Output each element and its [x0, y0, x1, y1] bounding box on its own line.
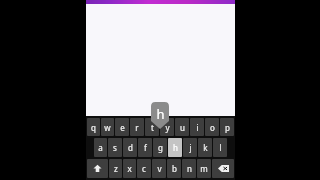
staticText: f — [144, 142, 147, 153]
button[interactable]: h — [168, 138, 182, 157]
staticText: h — [173, 142, 178, 153]
staticText: p — [225, 122, 230, 133]
button[interactable]: y — [160, 118, 174, 136]
staticText: u — [180, 122, 185, 133]
staticText: c — [142, 163, 146, 174]
staticText: n — [187, 163, 192, 174]
button[interactable]: r — [130, 118, 144, 136]
staticText: g — [158, 142, 163, 153]
button[interactable]: Key preview h — [151, 102, 169, 129]
button[interactable]: a — [94, 138, 107, 157]
staticText: m — [200, 163, 208, 174]
button[interactable]: n — [182, 159, 196, 178]
button[interactable]: m — [197, 159, 211, 178]
button[interactable]: k — [198, 138, 212, 157]
button[interactable]: c — [137, 159, 151, 178]
staticText: q — [91, 122, 96, 133]
button[interactable]: u — [175, 118, 189, 136]
button[interactable]: b — [167, 159, 181, 178]
staticText: i — [196, 122, 199, 133]
button[interactable]: z — [109, 159, 122, 178]
staticText: d — [128, 142, 133, 153]
staticText: e — [120, 122, 125, 133]
staticText: r — [135, 122, 139, 133]
button[interactable]: x — [123, 159, 136, 178]
button[interactable]: i — [190, 118, 204, 136]
button[interactable]: Backspace — [212, 159, 234, 178]
staticText: o — [210, 122, 215, 133]
staticText: x — [127, 163, 132, 174]
button[interactable]: g — [153, 138, 167, 157]
button[interactable]: s — [108, 138, 122, 157]
button[interactable]: p — [220, 118, 234, 136]
button[interactable]: w — [101, 118, 114, 136]
button[interactable]: d — [123, 138, 137, 157]
button[interactable] — [86, 4, 235, 116]
staticText: w — [104, 122, 111, 133]
button[interactable]: q — [87, 118, 100, 136]
staticText: y — [165, 122, 170, 133]
staticText: b — [172, 163, 177, 174]
button[interactable]: v — [152, 159, 166, 178]
staticText: l — [219, 142, 222, 153]
button[interactable]: j — [183, 138, 197, 157]
staticText: s — [113, 142, 117, 153]
staticText: t — [151, 122, 154, 133]
staticText: a — [98, 142, 103, 153]
button[interactable]: o — [205, 118, 219, 136]
button[interactable]: t — [145, 118, 159, 136]
staticText: h — [156, 105, 165, 123]
button[interactable]: e — [115, 118, 129, 136]
button[interactable]: l — [213, 138, 227, 157]
button[interactable]: Shift — [87, 159, 108, 178]
button[interactable] — [86, 0, 235, 4]
button[interactable]: f — [138, 138, 152, 157]
staticText: j — [189, 142, 192, 153]
staticText: k — [203, 142, 208, 153]
staticText: z — [114, 163, 118, 174]
staticText: v — [157, 163, 162, 174]
